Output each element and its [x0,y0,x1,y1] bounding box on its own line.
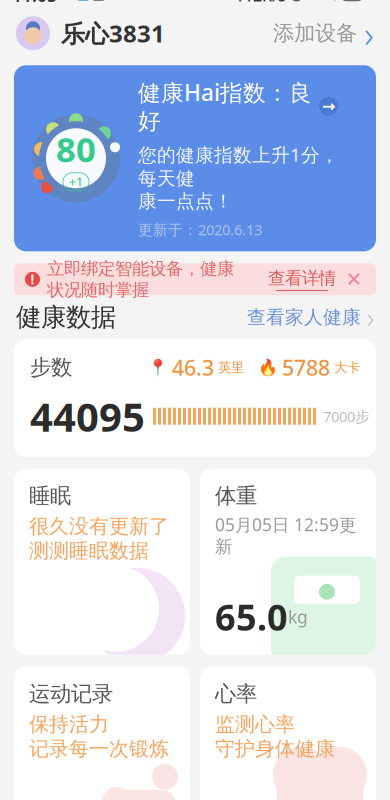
staticText: → [322,97,335,115]
staticText: 46.3 [172,353,214,382]
staticText: 健康Hai指数：良好 [138,77,312,135]
staticText: 心率 [215,681,257,707]
staticText: 65.0 [215,593,288,641]
staticText: 7000步 [323,406,370,426]
staticText: › [367,300,374,335]
staticText: 很久没有更新了 测测睡眠数据 [29,514,169,563]
button[interactable]: 查看详情 [268,268,336,291]
button[interactable]: 运动记录 [14,667,190,800]
staticText: 添加设备 [273,20,357,46]
staticText: 保持活力 记录每一次锻炼 [29,712,169,761]
staticText: ✕ [345,268,362,291]
staticText: +1 [69,174,83,190]
staticText: 乐心3831 [61,17,165,49]
staticText: 11:05 [12,0,57,7]
staticText: 🔥 [258,358,278,377]
staticText: 更新于：2020.6.13 [138,220,262,239]
staticText: 查看家人健康 [247,306,361,329]
staticText: 大卡 [334,359,360,376]
staticText: 步数 [30,354,72,381]
staticText: 44095 [30,390,145,443]
button[interactable]: 查看家人健康 [247,300,374,335]
button[interactable]: 80 [14,65,376,251]
staticText: 05月05日 12:59更新 [215,513,356,557]
button[interactable]: 步数 [14,339,376,457]
button[interactable]: 心率 [200,667,376,800]
button[interactable]: 关闭 [343,268,365,290]
staticText: 5788 [282,353,330,382]
staticText: kg [288,605,308,628]
staticText: 英里 [218,359,244,376]
staticText: 健康数据 [16,302,116,333]
staticText: ! [30,270,34,288]
staticText: 112K/s [235,0,286,6]
button[interactable]: 添加设备 [273,8,374,58]
staticText: 80 [56,126,96,172]
button[interactable]: 睡眠 [14,469,190,655]
staticText: 查看详情 [268,268,336,289]
button[interactable]: 乐心3831 [16,16,165,50]
button[interactable]: 体重 [200,469,376,655]
staticText: 运动记录 [29,681,113,707]
staticText: › [364,8,374,58]
staticText: 睡眠 [29,483,71,509]
staticText: 体重 [215,483,257,509]
staticText: 立即绑定智能设备，健康状况随时掌握 [47,258,234,301]
staticText: 监测心率 守护身体健康 [215,712,335,761]
staticText: 📍 [148,358,168,377]
staticText: 您的健康指数上升1分，每天健 康一点点！ [138,142,339,213]
